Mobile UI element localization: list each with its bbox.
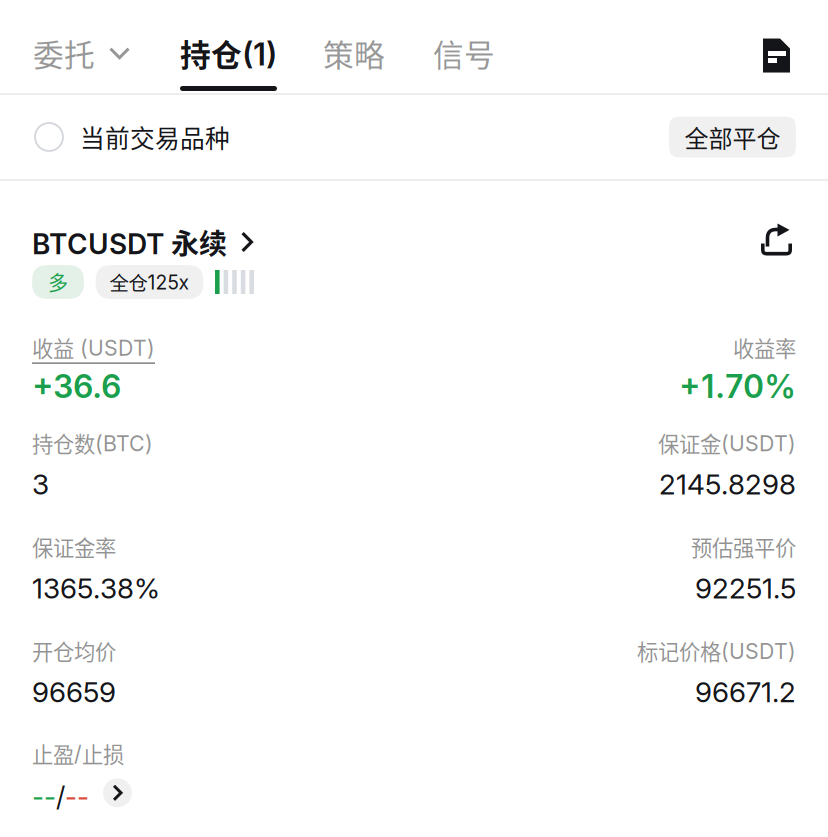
staticText: 收益 (USDT): [32, 332, 155, 363]
staticText: 信号: [433, 31, 495, 75]
button[interactable]: 当前交易品种: [32, 119, 230, 155]
staticText: 2145.8298: [659, 467, 796, 501]
staticText: 止盈/止损: [32, 738, 124, 769]
staticText: 标记价格(USDT): [637, 635, 796, 666]
staticText: 全仓125x: [109, 268, 189, 296]
staticText: BTCUSDT 永续: [32, 222, 227, 262]
staticText: 保证金率: [32, 531, 116, 562]
staticText: /: [56, 781, 65, 813]
button[interactable]: 全部平仓: [669, 116, 796, 157]
staticText: 1365.38%: [32, 571, 160, 605]
staticText: 多: [48, 267, 68, 296]
staticText: 持仓数(BTC): [32, 428, 153, 458]
staticText: --: [65, 781, 89, 813]
staticText: 92251.5: [695, 571, 796, 605]
staticText: +36.6: [32, 367, 121, 406]
staticText: 开仓均价: [32, 635, 116, 666]
staticText: 收益率: [733, 332, 796, 363]
button[interactable]: BTCUSDT 永续: [32, 222, 253, 262]
staticText: 3: [32, 467, 49, 501]
button[interactable]: --: [32, 781, 132, 813]
button[interactable]: 委托: [33, 0, 130, 93]
button[interactable]: 策略: [323, 0, 385, 93]
button[interactable]: 持仓(1): [180, 0, 277, 93]
staticText: 保证金(USDT): [658, 428, 796, 458]
staticText: 当前交易品种: [80, 119, 230, 155]
staticText: 策略: [323, 31, 385, 75]
staticText: --: [32, 781, 56, 813]
staticText: 委托: [33, 31, 95, 75]
button[interactable]: 信号: [433, 0, 495, 93]
staticText: 96671.2: [695, 675, 796, 709]
staticText: 96659: [32, 675, 116, 709]
button[interactable]: 订单记录: [763, 29, 790, 63]
staticText: 持仓(1): [180, 31, 277, 75]
button[interactable]: 分享: [765, 226, 796, 257]
staticText: +1.70%: [679, 367, 796, 406]
staticText: 全部平仓: [684, 120, 780, 154]
staticText: 预估强平价: [691, 531, 796, 562]
